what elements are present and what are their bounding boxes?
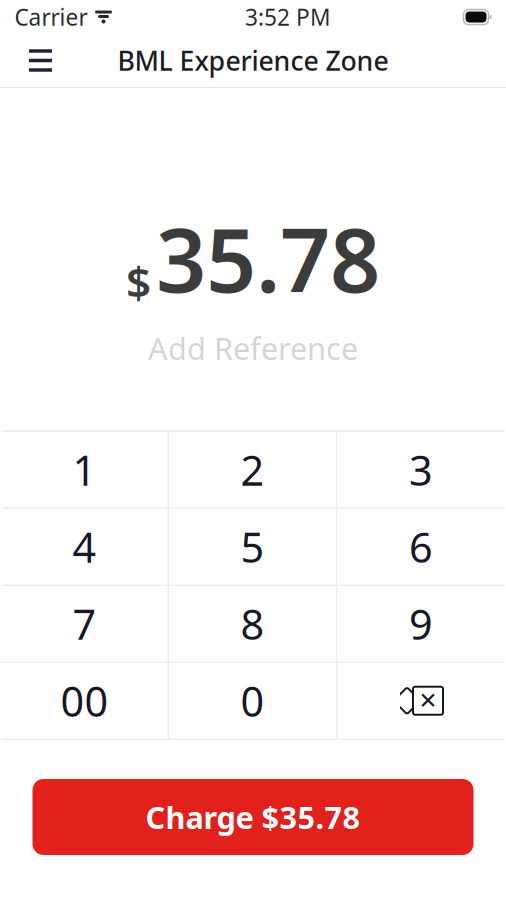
staticText: 35.78 — [156, 200, 380, 317]
button[interactable]: 7 — [1, 586, 167, 661]
button[interactable]: 3 — [337, 432, 504, 507]
staticText: 9 — [409, 596, 433, 651]
staticText: 5 — [240, 519, 264, 574]
button[interactable]: 00 — [1, 663, 167, 738]
staticText: Carrier — [14, 2, 87, 32]
button[interactable]: 0 — [169, 663, 336, 738]
button[interactable]: Delete — [337, 663, 504, 738]
button[interactable]: Add Reference — [138, 325, 368, 372]
button[interactable]: 5 — [169, 509, 336, 584]
staticText: 3 — [409, 442, 433, 497]
staticText: 1 — [72, 442, 96, 497]
staticText: 3:52 PM — [245, 2, 331, 32]
staticText: ✕ — [418, 688, 437, 714]
button[interactable]: 8 — [169, 586, 336, 661]
staticText: Charge $35.78 — [145, 797, 360, 837]
staticText: 00 — [60, 673, 108, 728]
staticText: 6 — [409, 519, 433, 574]
staticText: Add Reference — [148, 328, 358, 369]
button[interactable]: 9 — [337, 586, 504, 661]
staticText: $ — [126, 252, 151, 311]
staticText: 8 — [240, 596, 264, 651]
button[interactable]: 1 — [1, 432, 167, 507]
button[interactable]: Menu — [14, 34, 66, 86]
staticText: 2 — [240, 442, 264, 497]
button[interactable]: 4 — [1, 509, 167, 584]
staticText: 0 — [240, 673, 264, 728]
button[interactable]: 2 — [169, 432, 336, 507]
staticText: 4 — [72, 519, 96, 574]
staticText: BML Experience Zone — [117, 43, 388, 78]
button[interactable]: Charge $35.78 — [32, 779, 473, 855]
staticText: 7 — [72, 596, 96, 651]
button[interactable]: 6 — [337, 509, 504, 584]
